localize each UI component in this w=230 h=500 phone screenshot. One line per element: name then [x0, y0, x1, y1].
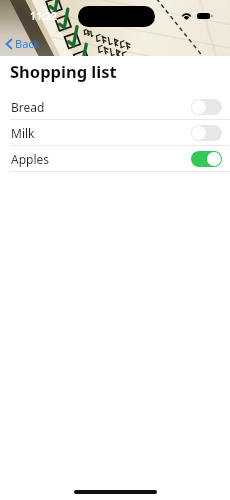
- button[interactable]: Milk: [0, 120, 230, 145]
- staticText: Shopping list: [10, 60, 117, 82]
- staticText: Bread: [11, 99, 45, 115]
- staticText: 11:22: [30, 9, 57, 23]
- button[interactable]: Apples: [0, 146, 230, 171]
- staticText: Apples: [11, 151, 50, 167]
- button[interactable]: Bread: [0, 94, 230, 119]
- staticText: Milk: [11, 125, 35, 141]
- staticText: Back: [15, 36, 40, 51]
- button[interactable]: Back: [3, 34, 43, 53]
